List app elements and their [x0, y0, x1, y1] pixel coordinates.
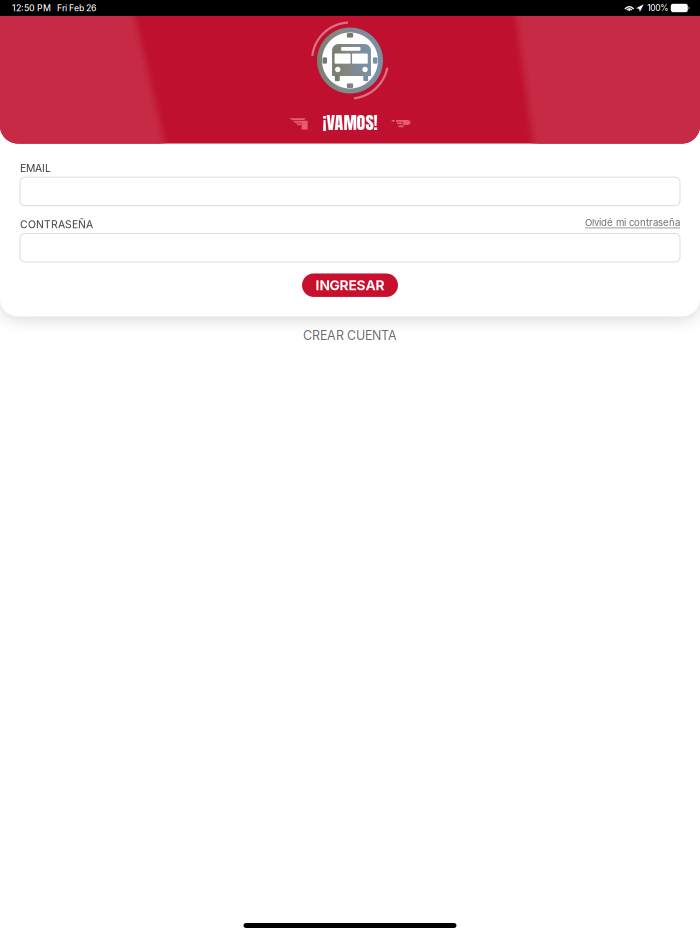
staticText: CREAR CUENTA — [303, 328, 397, 343]
staticText: 12:50 PM Fri Feb 26 — [12, 3, 96, 13]
button[interactable]: INGRESAR — [302, 273, 398, 297]
button[interactable]: Olvidé mi contraseña — [585, 217, 680, 228]
staticText: INGRESAR — [315, 277, 384, 293]
staticText: 100% — [647, 3, 668, 13]
staticText: Olvidé mi contraseña — [585, 217, 680, 228]
staticText: ¡VAMOS! — [322, 109, 377, 136]
staticText: CONTRASEÑA — [20, 218, 93, 231]
staticText: EMAIL — [20, 162, 51, 174]
button[interactable]: CREAR CUENTA — [0, 328, 700, 343]
